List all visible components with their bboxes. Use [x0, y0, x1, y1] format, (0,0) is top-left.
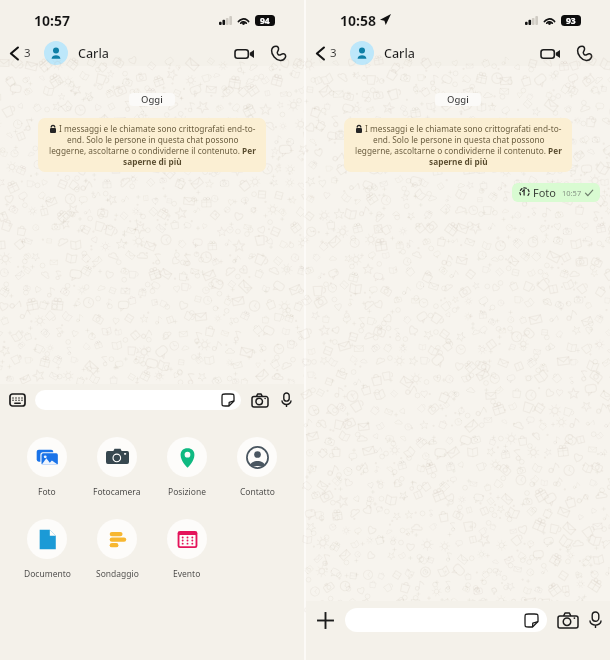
staticText: saperne di più — [429, 156, 488, 167]
button[interactable]: Attach — [314, 609, 336, 631]
button[interactable]: Carla — [350, 41, 415, 65]
staticText: 10:57 — [562, 188, 582, 198]
staticText: 3 — [24, 45, 31, 61]
staticText: 93 — [566, 15, 576, 26]
button[interactable]: Voice call — [267, 42, 290, 65]
staticText: Foto — [533, 185, 556, 200]
staticText: end. Solo le persone in questa chat poss… — [373, 134, 545, 145]
button[interactable]: Message input — [345, 608, 547, 632]
button[interactable]: Evento — [152, 519, 222, 580]
staticText: Sondaggio — [96, 568, 139, 580]
button[interactable]: Contatto — [222, 437, 292, 498]
staticText: Oggi — [447, 93, 469, 106]
staticText: saperne di più — [123, 156, 182, 167]
button[interactable]: Back, 3 unread — [6, 42, 35, 64]
staticText: leggerne, ascoltarne o condividerne il c… — [355, 145, 562, 156]
button[interactable]: Posizione — [152, 437, 222, 498]
button[interactable]: Camera — [251, 391, 269, 409]
staticText: Contatto — [240, 486, 275, 498]
staticText: 10:57 — [34, 11, 70, 30]
staticText: Carla — [384, 45, 415, 62]
button[interactable]: Voice call — [573, 42, 596, 65]
button[interactable]: I messaggi e le chiamate sono crittograf… — [38, 118, 266, 172]
staticText: Evento — [173, 568, 201, 580]
staticText: end. Solo le persone in questa chat poss… — [67, 134, 239, 145]
button[interactable]: Voice message — [278, 392, 294, 408]
button[interactable]: I messaggi e le chiamate sono crittograf… — [344, 118, 572, 172]
button[interactable]: Fotocamera — [82, 437, 152, 498]
button[interactable]: Sondaggio — [82, 519, 152, 580]
staticText: Carla — [78, 45, 109, 62]
button[interactable]: Back, 3 unread — [312, 42, 341, 64]
staticText: Fotocamera — [93, 486, 141, 498]
staticText: leggerne, ascoltarne o condividerne il c… — [49, 145, 256, 156]
staticText: 94 — [260, 15, 270, 26]
staticText: I messaggi e le chiamate sono crittograf… — [59, 123, 256, 134]
staticText: Posizione — [168, 486, 206, 498]
button[interactable]: Foto — [12, 437, 82, 498]
button[interactable]: Message input — [35, 390, 241, 410]
button[interactable]: Keyboard — [9, 392, 25, 408]
staticText: Documento — [24, 568, 71, 580]
staticText: 3 — [330, 45, 337, 61]
button[interactable]: Video call — [537, 44, 564, 64]
button[interactable]: Video call — [231, 44, 258, 64]
staticText: Oggi — [141, 93, 163, 106]
staticText: I messaggi e le chiamate sono crittograf… — [365, 123, 562, 134]
button[interactable]: Camera — [557, 609, 579, 631]
staticText: Foto — [38, 486, 56, 498]
button[interactable]: Foto — [512, 183, 600, 202]
button[interactable]: Documento — [12, 519, 82, 580]
staticText: 10:58 — [340, 11, 376, 30]
button[interactable]: Carla — [44, 41, 109, 65]
button[interactable]: Voice message — [585, 610, 605, 630]
